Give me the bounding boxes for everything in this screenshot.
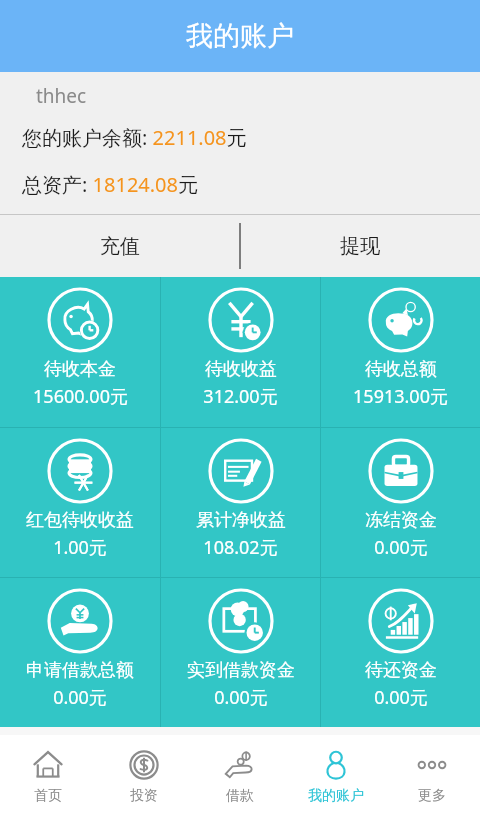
button[interactable]: 充值 bbox=[0, 215, 240, 277]
staticText: 待还资金 bbox=[365, 659, 437, 682]
button[interactable]: 提现 bbox=[240, 215, 480, 277]
staticText: 充值 bbox=[100, 234, 140, 259]
staticText: 首页 bbox=[34, 787, 62, 805]
staticText: thhec bbox=[36, 83, 87, 109]
staticText: 冻结资金 bbox=[365, 509, 437, 532]
staticText: 申请借款总额 bbox=[26, 659, 134, 682]
other: 我的账户 bbox=[319, 748, 353, 782]
staticText: 我的账户 bbox=[186, 19, 294, 53]
staticText: 待收总额 bbox=[365, 358, 437, 381]
staticText: 您的账户余额: 2211.08元 bbox=[22, 124, 247, 151]
staticText: 累计净收益 bbox=[196, 509, 286, 532]
staticText: 1.00元 bbox=[53, 535, 107, 560]
other: 首页 bbox=[31, 748, 65, 782]
other: 投资 bbox=[127, 748, 161, 782]
staticText: 借款 bbox=[226, 787, 254, 805]
staticText: 实到借款资金 bbox=[187, 659, 295, 682]
staticText: 108.02元 bbox=[203, 535, 278, 560]
staticText: 0.00元 bbox=[53, 685, 107, 710]
staticText: 更多 bbox=[418, 787, 446, 805]
button[interactable]: 累计净收益 bbox=[161, 428, 320, 577]
staticText: 0.00元 bbox=[374, 535, 428, 560]
staticText: 红包待收收益 bbox=[26, 509, 134, 532]
staticText: 0.00元 bbox=[214, 685, 268, 710]
other: 借款 bbox=[223, 748, 257, 782]
button[interactable]: 借款 bbox=[192, 735, 288, 817]
staticText: 投资 bbox=[130, 787, 158, 805]
button[interactable]: 红包待收收益 bbox=[0, 428, 160, 577]
button[interactable]: 待收收益 bbox=[161, 277, 320, 427]
staticText: 总资产: 18124.08元 bbox=[22, 171, 198, 198]
button[interactable]: 冻结资金 bbox=[321, 428, 480, 577]
button[interactable]: 更多 bbox=[384, 735, 480, 817]
button[interactable]: 待收总额 bbox=[321, 277, 480, 427]
button[interactable]: 待还资金 bbox=[321, 578, 480, 727]
staticText: 我的账户 bbox=[308, 787, 364, 805]
staticText: 提现 bbox=[340, 234, 380, 259]
button[interactable]: 首页 bbox=[0, 735, 96, 817]
button[interactable]: 我的账户 bbox=[288, 735, 384, 817]
staticText: 待收本金 bbox=[44, 358, 116, 381]
button[interactable]: 投资 bbox=[96, 735, 192, 817]
staticText: 15600.00元 bbox=[33, 384, 128, 409]
staticText: 312.00元 bbox=[203, 384, 278, 409]
staticText: 0.00元 bbox=[374, 685, 428, 710]
staticText: 15913.00元 bbox=[353, 384, 448, 409]
staticText: 待收收益 bbox=[205, 358, 277, 381]
button[interactable]: 实到借款资金 bbox=[161, 578, 320, 727]
button[interactable]: 待收本金 bbox=[0, 277, 160, 427]
other: 更多 bbox=[415, 748, 449, 782]
button[interactable]: 申请借款总额 bbox=[0, 578, 160, 727]
